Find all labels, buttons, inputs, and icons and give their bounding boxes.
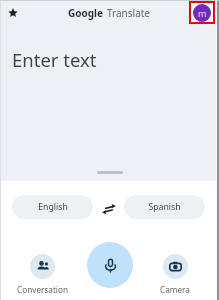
staticText: Translate xyxy=(107,6,151,20)
button[interactable]: Speak xyxy=(87,242,133,288)
staticText: English xyxy=(38,201,68,213)
button[interactable]: Conversation xyxy=(7,254,77,295)
button[interactable]: Spanish xyxy=(124,195,205,219)
button[interactable]: Camera xyxy=(140,254,210,295)
staticText: Enter text xyxy=(12,47,97,72)
button[interactable]: Account xyxy=(191,3,213,22)
button[interactable]: Favorite xyxy=(4,4,22,22)
button[interactable]: Swap languages xyxy=(99,199,119,219)
staticText: Conversation xyxy=(17,284,68,295)
staticText: Spanish xyxy=(148,201,181,213)
staticText: m xyxy=(198,7,207,19)
staticText: Camera xyxy=(160,284,190,295)
button[interactable]: English xyxy=(12,195,93,219)
staticText: Google xyxy=(68,6,104,20)
